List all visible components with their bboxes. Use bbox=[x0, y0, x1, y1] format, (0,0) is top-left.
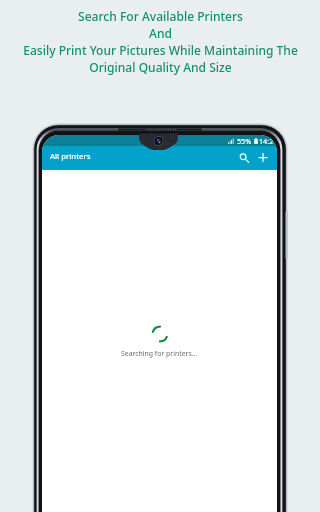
staticText: 55% bbox=[237, 136, 252, 146]
staticText: Searching for printers... bbox=[121, 349, 198, 358]
staticText: Search For Available Printers And Easily… bbox=[23, 8, 298, 76]
button[interactable]: Add printer bbox=[254, 149, 272, 167]
staticText: 14:2 bbox=[259, 136, 274, 146]
staticText: All printers bbox=[50, 151, 91, 162]
button[interactable]: Search bbox=[235, 149, 253, 167]
